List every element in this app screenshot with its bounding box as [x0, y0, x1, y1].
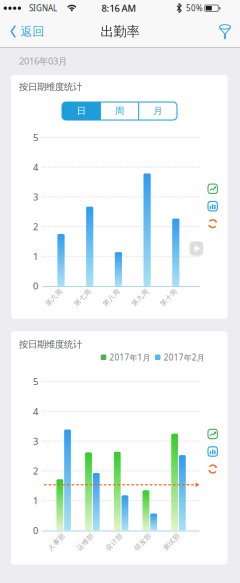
staticText: SIGNAL [29, 3, 57, 13]
staticText: 设计部 [104, 538, 125, 546]
button[interactable]: Refresh [207, 463, 219, 475]
button[interactable]: Line chart [207, 183, 219, 195]
button[interactable]: Bar chart [207, 445, 219, 457]
staticText: 2 [33, 465, 38, 477]
staticText: 日 [77, 105, 86, 117]
button[interactable]: Line chart [207, 428, 219, 440]
staticText: 出勤率 [100, 23, 139, 40]
staticText: 第六周 [43, 293, 64, 302]
button[interactable]: Play [190, 241, 203, 256]
staticText: 4 [33, 405, 38, 417]
staticText: 返回 [20, 24, 44, 39]
staticText: 0 [33, 524, 38, 537]
staticText: 0 [33, 280, 38, 292]
staticText: 人事部 [46, 538, 67, 546]
staticText: 第七周 [72, 293, 93, 302]
staticText: 第九周 [130, 293, 151, 302]
button[interactable]: 周 [100, 102, 138, 120]
staticText: 50% [186, 3, 203, 13]
button[interactable]: Filter [215, 20, 235, 42]
staticText: 3 [33, 435, 38, 447]
staticText: 2017年1月 [109, 352, 150, 363]
staticText: 第八周 [101, 293, 122, 302]
button[interactable]: 月 [139, 102, 177, 120]
staticText: 运维部 [75, 538, 96, 546]
staticText: 2017年2月 [164, 352, 205, 363]
staticText: 5 [33, 131, 38, 144]
staticText: 3 [33, 191, 38, 203]
button[interactable]: Back [10, 15, 44, 47]
staticText: 2016年03月 [19, 55, 67, 67]
staticText: 8:16 AM [101, 2, 136, 14]
staticText: 第十周 [158, 293, 179, 302]
button[interactable]: 日 [62, 102, 100, 120]
staticText: 测试部 [161, 538, 182, 546]
staticText: 研发部 [132, 538, 153, 546]
staticText: 按日期维度统计 [19, 81, 82, 93]
staticText: 4 [33, 161, 38, 173]
button[interactable]: Refresh [207, 218, 219, 230]
staticText: 1 [33, 250, 38, 262]
staticText: 按日期维度统计 [19, 339, 82, 350]
staticText: 5 [33, 375, 38, 388]
staticText: 2 [33, 220, 38, 233]
staticText: 月 [153, 105, 162, 117]
button[interactable]: Bar chart [207, 200, 219, 212]
staticText: 1 [33, 494, 38, 507]
staticText: 周 [115, 105, 124, 117]
